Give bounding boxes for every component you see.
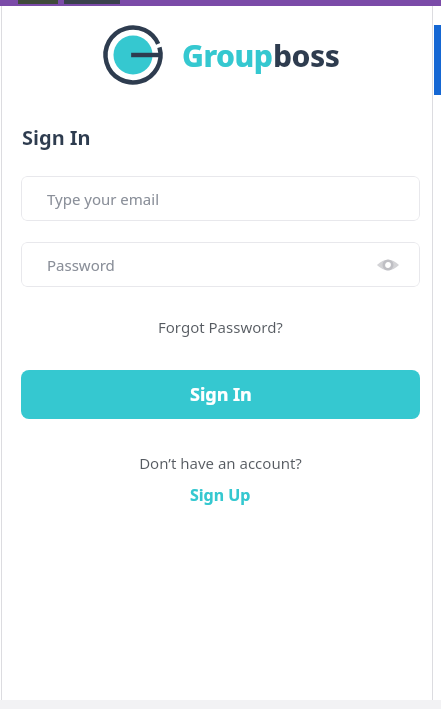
staticText: Group [182,35,273,76]
button[interactable]: Forgot Password? [152,314,289,340]
button[interactable]: Type your email [21,176,420,221]
staticText: Forgot Password? [158,317,283,337]
staticText: Sign In [190,382,252,407]
button[interactable]: Sign In [21,370,420,419]
button[interactable]: Show password [374,251,402,279]
button[interactable]: Sign Up [182,482,259,508]
staticText: Sign In [22,124,91,151]
staticText: Type your email [47,189,160,209]
staticText: Sign Up [190,484,251,506]
staticText: Password [47,255,115,275]
staticText: Don’t have an account? [139,453,302,473]
button[interactable]: Password [21,242,420,287]
staticText: boss [273,35,340,76]
